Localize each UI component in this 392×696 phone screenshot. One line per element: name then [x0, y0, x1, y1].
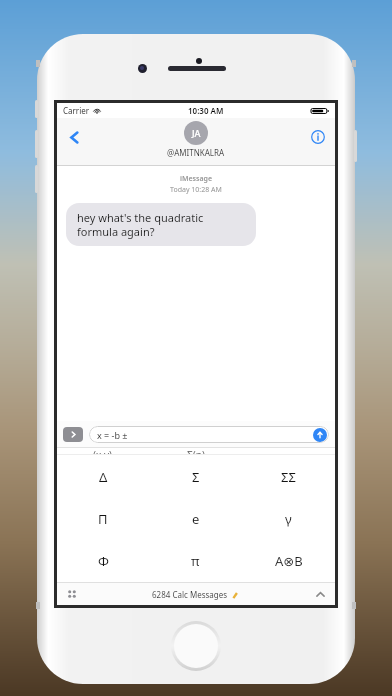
button[interactable]: Apps: [63, 427, 83, 442]
staticText: (x,y): [93, 448, 113, 454]
staticText: π: [191, 552, 200, 570]
staticText: A⊗B: [275, 552, 303, 570]
button[interactable]: Back: [61, 124, 87, 150]
button[interactable]: Φ: [57, 540, 149, 582]
staticText: 10:30 AM: [188, 105, 224, 116]
button[interactable]: 6284 Calc Messages: [152, 589, 239, 600]
staticText: Π: [98, 510, 108, 528]
button[interactable]: A⊗B: [242, 540, 335, 582]
staticText: ΣΣ: [281, 468, 296, 486]
staticText: e: [192, 510, 200, 528]
staticText: @AMITNKALRA: [167, 147, 225, 158]
button[interactable]: App grid: [64, 586, 80, 602]
staticText: Carrier: [63, 105, 90, 116]
staticText: Φ: [98, 552, 109, 570]
staticText: x = -b ±: [97, 429, 128, 441]
staticText: Σ: [192, 468, 200, 486]
staticText: JA: [192, 127, 201, 139]
button[interactable]: Π: [57, 498, 149, 540]
button[interactable]: Σ: [149, 455, 242, 498]
button[interactable]: e: [149, 498, 242, 540]
button[interactable]: ΣΣ: [242, 455, 335, 498]
button[interactable]: Expand: [312, 586, 328, 602]
staticText: Δ: [99, 468, 108, 486]
button[interactable]: γ: [242, 498, 335, 540]
staticText: iMessage: [57, 174, 335, 184]
button[interactable]: x = -b ±: [89, 426, 329, 443]
button[interactable]: π: [149, 540, 242, 582]
staticText: γ: [285, 510, 292, 528]
staticText: 6284 Calc Messages: [152, 589, 228, 600]
button[interactable]: Home: [171, 621, 221, 671]
button[interactable]: JA: [167, 121, 225, 158]
button[interactable]: Send: [313, 428, 327, 442]
button[interactable]: Δ: [57, 455, 149, 498]
button[interactable]: Details: [305, 124, 331, 150]
button[interactable]: hey what's the quadratic formula again?: [66, 203, 256, 246]
staticText: hey what's the quadratic formula again?: [77, 210, 245, 239]
staticText: Σ(n): [187, 448, 205, 454]
staticText: Today 10:28 AM: [57, 185, 335, 195]
